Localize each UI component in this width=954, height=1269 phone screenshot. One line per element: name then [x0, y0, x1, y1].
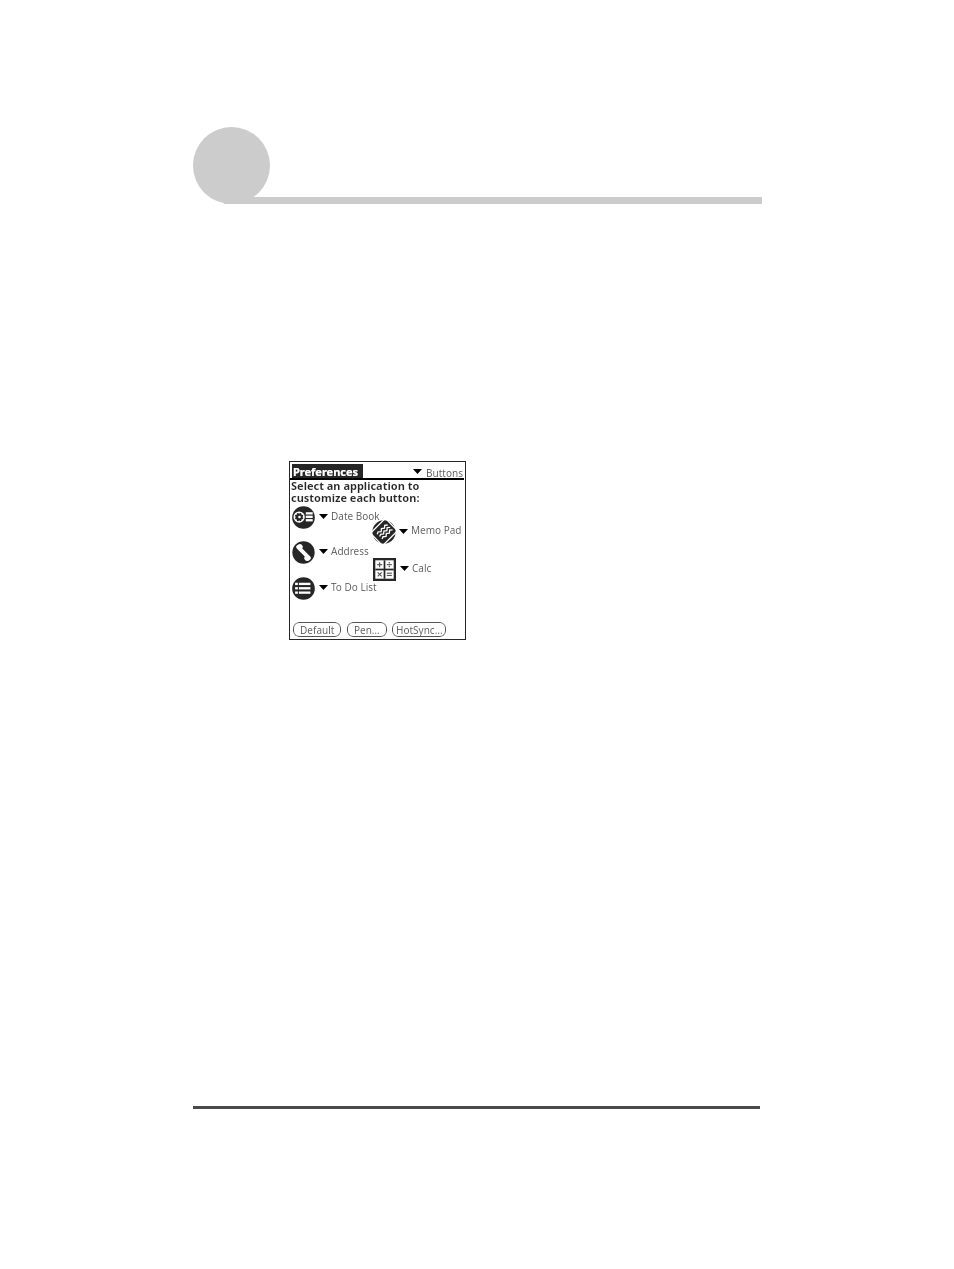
button[interactable]: Pen… [347, 622, 387, 637]
other: Address [292, 541, 315, 564]
button[interactable]: Default [293, 622, 341, 637]
button[interactable]: To Do List [292, 577, 377, 600]
button[interactable]: Address [292, 541, 369, 564]
button[interactable]: Memo Pad [372, 520, 462, 544]
staticText: Select an application to [291, 478, 420, 493]
staticText: Pen… [354, 623, 380, 637]
button[interactable]: Date Book [292, 506, 380, 529]
button[interactable]: Calc [373, 558, 432, 581]
staticText: Default [300, 623, 335, 637]
other: Calc [373, 558, 396, 581]
button[interactable]: Buttons [413, 464, 463, 479]
button[interactable]: Preferences [292, 464, 363, 479]
staticText: Memo Pad [411, 523, 462, 537]
other: To Do List [292, 577, 315, 600]
staticText: Preferences [293, 464, 359, 479]
staticText: HotSync… [396, 623, 443, 637]
staticText: Date Book [331, 509, 380, 523]
staticText: Address [331, 544, 369, 558]
other: Memo Pad [372, 520, 396, 544]
staticText: To Do List [331, 580, 377, 594]
button[interactable]: HotSync… [392, 622, 446, 637]
staticText: Calc [412, 561, 432, 575]
staticText: Buttons [426, 466, 463, 480]
staticText: customize each button: [291, 490, 420, 505]
other: Date Book [292, 506, 315, 529]
